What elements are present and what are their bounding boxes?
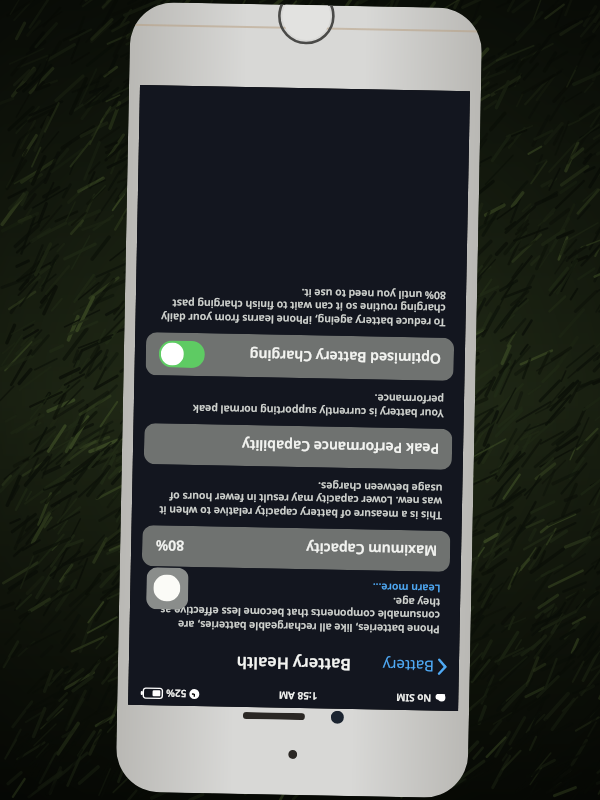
button[interactable]: Optimised Battery Charging toggle — [159, 340, 205, 368]
staticText: To reduce battery ageing, iPhone learns … — [155, 283, 446, 330]
staticText: Your battery is currently supporting nor… — [154, 387, 444, 421]
staticText: Optimised Battery Charging — [249, 346, 441, 369]
button[interactable]: Peak Performance Capability — [144, 423, 452, 470]
staticText: Battery Health — [236, 652, 351, 676]
staticText: Learn more... — [372, 580, 441, 596]
staticText: Phone batteries, like all rechargeable b… — [149, 590, 440, 637]
staticText: 80% — [155, 536, 184, 556]
button[interactable]: Optimised Battery Charging — [145, 332, 454, 381]
staticText: Peak Performance Capability — [241, 436, 439, 459]
staticText: 1:58 AM — [278, 689, 317, 703]
staticText: No SIM — [395, 691, 431, 706]
staticText: 52% — [165, 686, 186, 701]
staticText: This is a measure of battery capacity re… — [152, 476, 442, 523]
button[interactable]: Battery — [378, 652, 451, 681]
staticText: Maximum Capacity — [306, 539, 437, 561]
staticText: Battery — [382, 656, 434, 677]
button[interactable]: AssistiveTouch — [146, 567, 189, 610]
button[interactable]: Maximum Capacity — [142, 525, 450, 572]
